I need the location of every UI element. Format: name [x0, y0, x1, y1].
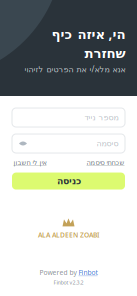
staticText: שכחתי סיסמה	[86, 159, 124, 167]
staticText: אנא מלא/י את הפרטים לזיהוי	[24, 64, 125, 74]
staticText: Finbot v2.3.2	[53, 279, 83, 286]
button[interactable]: כניסה	[12, 173, 125, 190]
button[interactable]: שכחתי סיסמה	[86, 159, 124, 167]
staticText: הי, איזה כיף	[51, 25, 125, 43]
staticText: כניסה	[56, 176, 80, 186]
staticText: אין לי חשבון	[13, 159, 46, 167]
staticText: שחזרת	[84, 46, 125, 61]
button[interactable]: אין לי חשבון	[13, 159, 46, 167]
staticText: ALA ALDEEN ZOABI	[38, 230, 99, 239]
staticText: סיסמה	[96, 139, 118, 148]
staticText: Finbot	[78, 268, 97, 277]
staticText: מספר נייד	[84, 113, 118, 122]
staticText: Powered by	[39, 268, 76, 277]
